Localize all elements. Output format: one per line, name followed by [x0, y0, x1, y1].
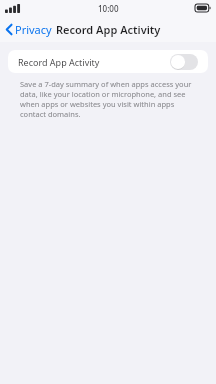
- staticText: 10:00: [98, 3, 119, 14]
- button[interactable]: Record App Activity: [8, 50, 208, 73]
- staticText: Record App Activity: [56, 22, 161, 37]
- staticText: Record App Activity: [18, 56, 100, 68]
- button[interactable]: Record App Activity toggle, off: [170, 54, 198, 70]
- staticText: Save a 7-day summary of when apps access…: [20, 79, 202, 119]
- staticText: Privacy: [15, 22, 52, 37]
- button[interactable]: Privacy: [0, 19, 58, 40]
